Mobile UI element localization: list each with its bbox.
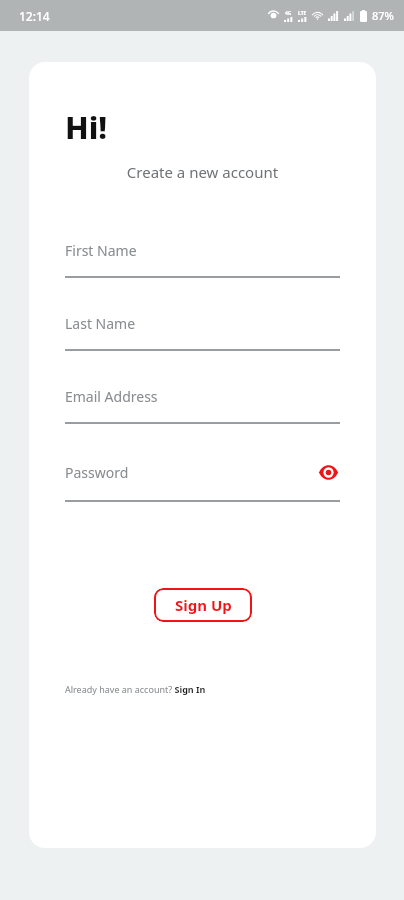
button[interactable]: Sign Up: [154, 588, 252, 622]
staticText: Email Address: [65, 387, 340, 406]
button[interactable]: Already have an account? Sign In: [65, 683, 206, 695]
staticText: Hi!: [65, 106, 108, 148]
button[interactable]: Email Address: [65, 387, 340, 424]
button[interactable]: First Name: [65, 241, 340, 278]
button[interactable]: Password: [65, 460, 340, 502]
staticText: Password: [65, 463, 316, 482]
staticText: Already have an account? Sign In: [65, 683, 206, 695]
staticText: LTE: [298, 10, 307, 17]
staticText: 4G: [285, 10, 292, 17]
button[interactable]: Show password: [316, 460, 340, 484]
staticText: Create a new account: [29, 162, 376, 182]
button[interactable]: Last Name: [65, 314, 340, 351]
staticText: Sign Up: [175, 595, 232, 615]
staticText: 87%: [372, 8, 394, 23]
staticText: First Name: [65, 241, 340, 260]
staticText: Last Name: [65, 314, 340, 333]
staticText: 12:14: [19, 8, 50, 24]
